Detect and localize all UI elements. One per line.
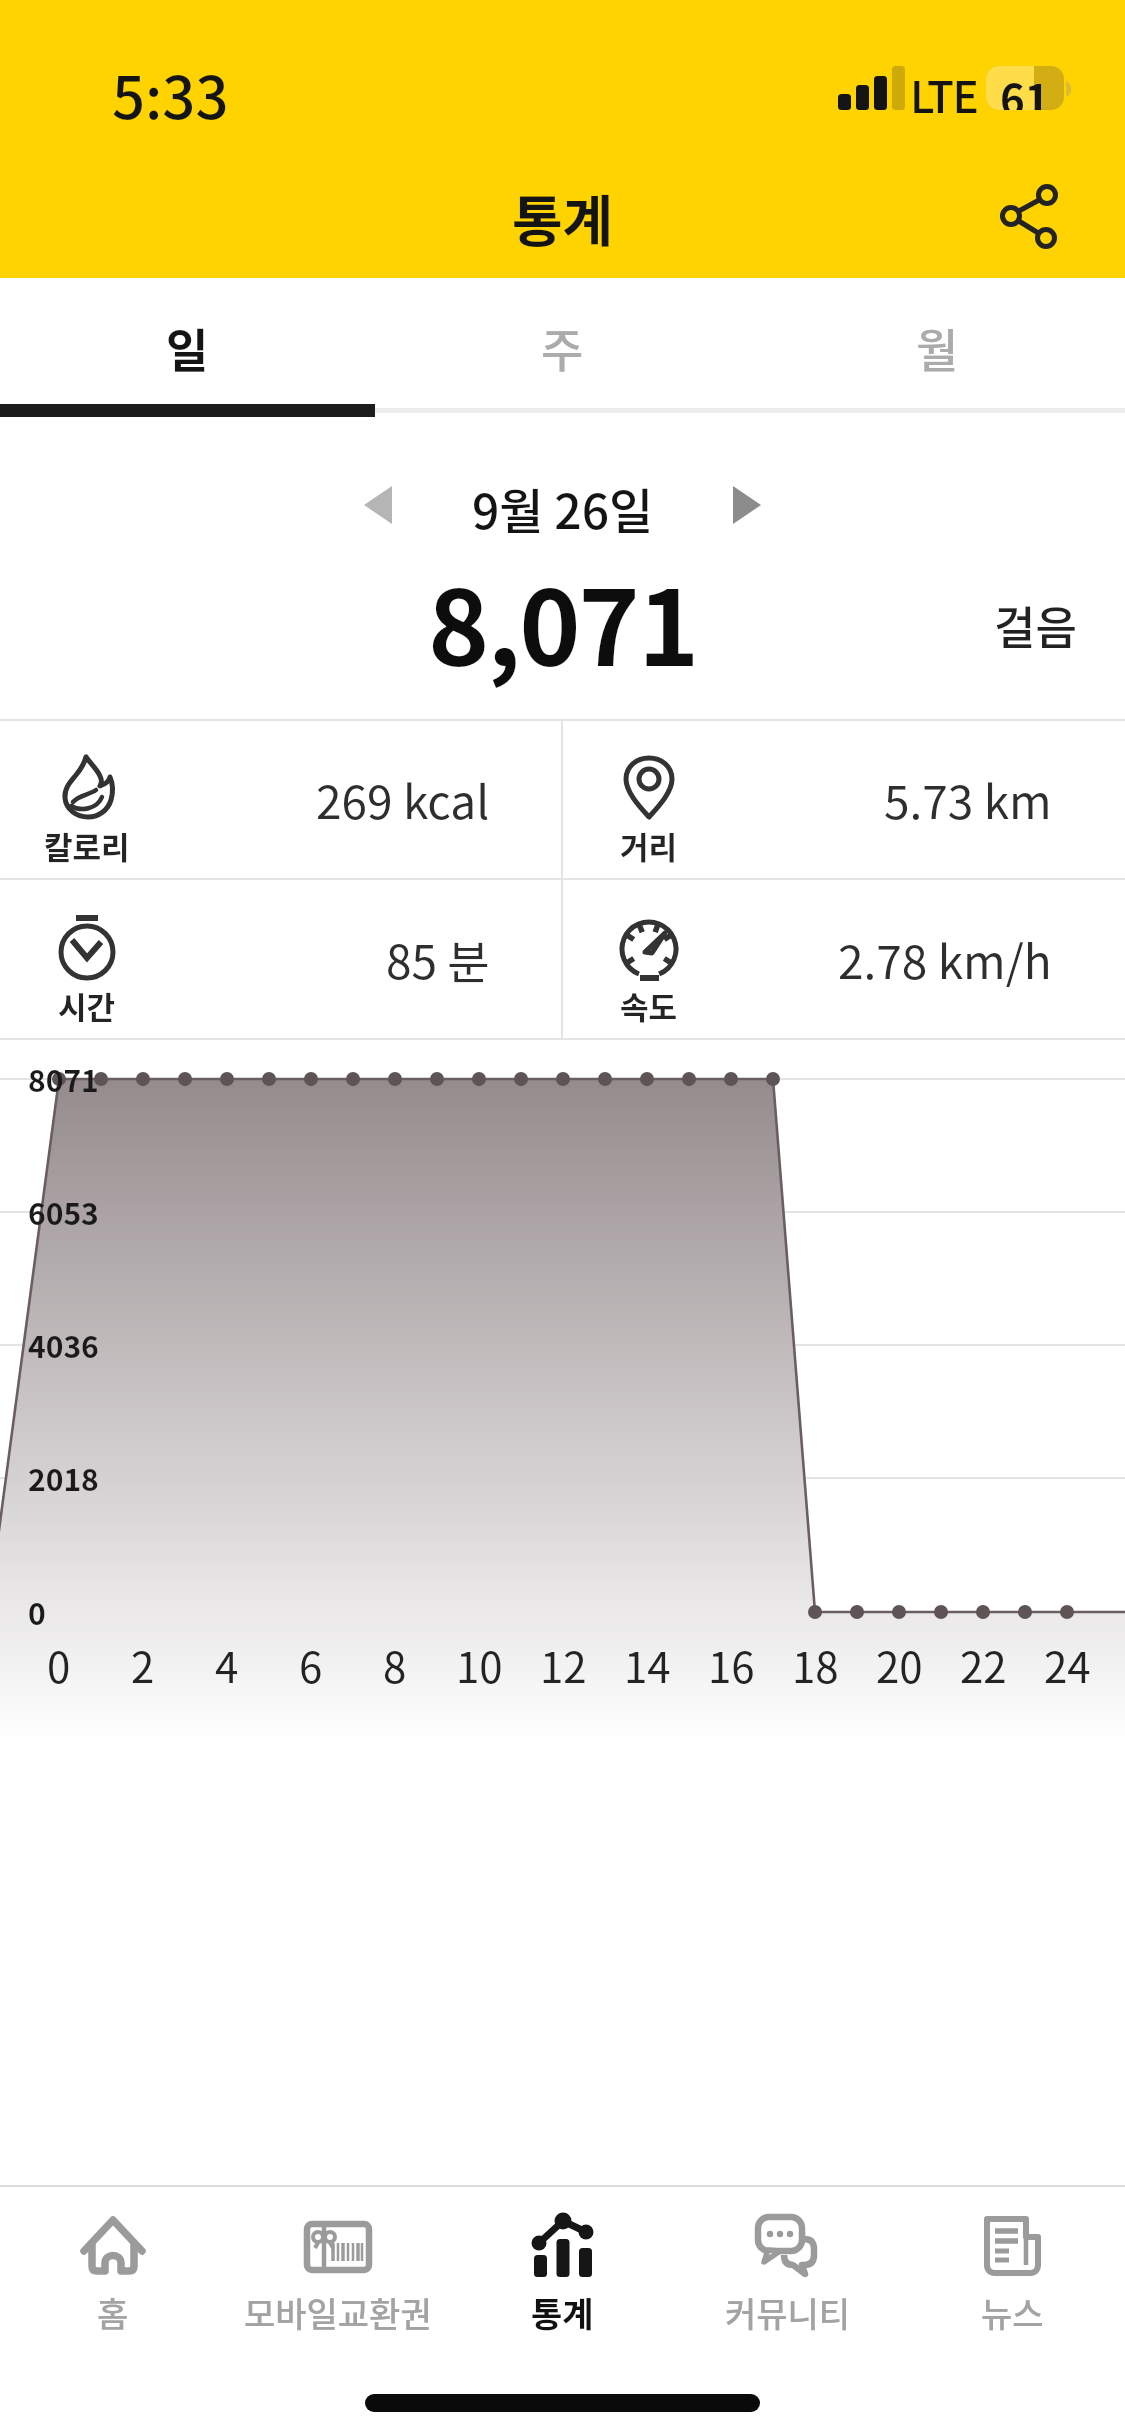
button[interactable]: 커뮤니티	[675, 2185, 900, 2436]
staticText: LTE	[910, 62, 978, 126]
button[interactable]: 월	[750, 278, 1125, 417]
staticText: 4	[215, 1634, 239, 1695]
staticText: 0	[47, 1634, 71, 1695]
staticText: 85 분	[386, 926, 490, 993]
button[interactable]: 통계	[450, 2185, 675, 2436]
staticText: 10	[456, 1634, 503, 1695]
staticText: 0	[28, 1590, 46, 1633]
staticText: 시간	[58, 983, 116, 1028]
staticText: 18	[792, 1634, 839, 1695]
button[interactable]: 주	[375, 278, 750, 417]
staticText: 269 kcal	[316, 766, 490, 833]
staticText: 14	[624, 1634, 671, 1695]
staticText: 16	[708, 1634, 755, 1695]
staticText: 8	[383, 1634, 407, 1695]
button[interactable]	[348, 473, 408, 537]
staticText: 주	[541, 314, 584, 381]
staticText: 2018	[28, 1456, 99, 1499]
button[interactable]: 일	[0, 278, 375, 417]
staticText: 모바일교환권	[244, 2288, 432, 2337]
staticText: 2.78 km/h	[838, 926, 1052, 993]
button[interactable]	[995, 175, 1077, 257]
staticText: 61	[1000, 66, 1050, 110]
staticText: 6	[299, 1634, 323, 1695]
staticText: 5:33	[112, 52, 229, 136]
staticText: 월	[916, 314, 959, 381]
staticText: 2	[131, 1634, 155, 1695]
staticText: 거리	[620, 823, 678, 868]
staticText: 통계	[531, 2288, 594, 2337]
staticText: 걸음	[994, 593, 1077, 658]
staticText: 커뮤니티	[725, 2288, 851, 2337]
staticText: 20	[876, 1634, 923, 1695]
staticText: 홈	[97, 2288, 129, 2337]
staticText: 5.73 km	[884, 766, 1052, 833]
staticText: 일	[166, 314, 209, 381]
staticText: 통계	[512, 177, 614, 257]
button[interactable]: 홈	[0, 2185, 225, 2436]
staticText: 뉴스	[981, 2288, 1044, 2337]
staticText: 22	[960, 1634, 1007, 1695]
staticText: 4036	[28, 1323, 99, 1366]
staticText: 8,071	[428, 545, 698, 696]
staticText: 속도	[620, 983, 678, 1028]
button[interactable]: 뉴스	[900, 2185, 1125, 2436]
staticText: 12	[540, 1634, 587, 1695]
button[interactable]: 모바일교환권	[225, 2185, 450, 2436]
button[interactable]	[717, 473, 777, 537]
staticText: 6053	[28, 1190, 99, 1233]
staticText: 9월 26일	[472, 473, 654, 543]
staticText: 8071	[28, 1057, 99, 1100]
staticText: 24	[1044, 1634, 1091, 1695]
staticText: 칼로리	[44, 823, 130, 868]
